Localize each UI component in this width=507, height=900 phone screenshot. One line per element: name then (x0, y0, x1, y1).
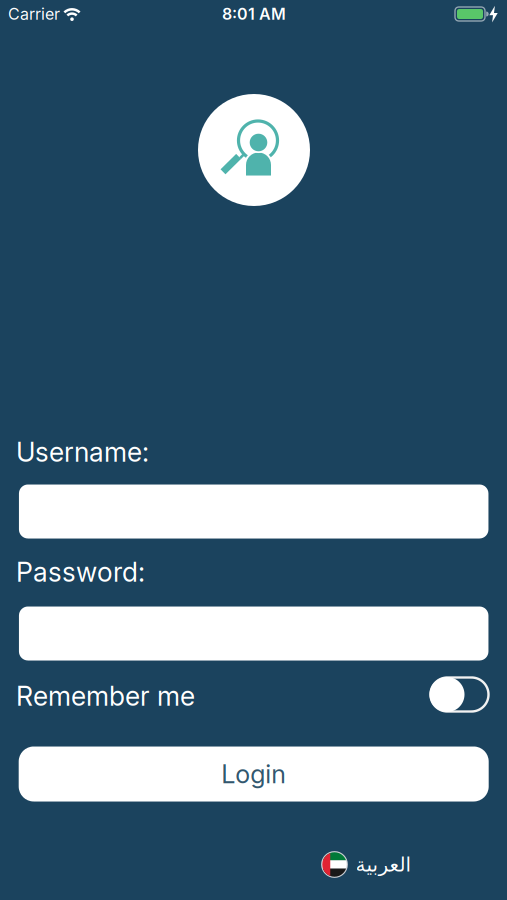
button[interactable]: العربية (321, 851, 411, 878)
staticText: العربية (355, 853, 411, 876)
button[interactable]: Password (19, 606, 488, 660)
staticText: Carrier (8, 5, 60, 23)
button[interactable]: Login (19, 746, 489, 801)
button[interactable]: Remember me (429, 676, 490, 713)
staticText: Password: (16, 556, 145, 588)
staticText: Username: (16, 436, 149, 468)
staticText: Remember me (16, 680, 195, 712)
staticText: Login (221, 759, 286, 789)
button[interactable]: Username (19, 484, 488, 538)
staticText: 8:01 AM (222, 5, 286, 23)
